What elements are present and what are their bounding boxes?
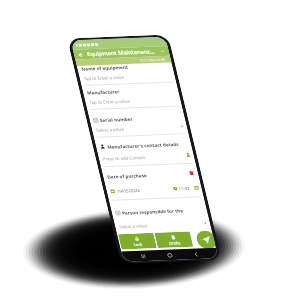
- button[interactable]: Back: [186, 245, 206, 264]
- staticText: Press to add Contact: [100, 135, 148, 180]
- staticText: Tap to Enter a value: [86, 80, 133, 123]
- staticText: Tap to Enter a value: [81, 56, 127, 99]
- staticText: Name of equipment: [78, 43, 131, 92]
- button[interactable]: Drafts: [148, 216, 199, 264]
- staticText: Manufacturer: [84, 74, 122, 110]
- button[interactable]: Tap to Enter a value: [81, 52, 184, 148]
- button[interactable]: Serial number: [85, 70, 189, 167]
- staticText: Serial number: [97, 101, 136, 138]
- button[interactable]: Select a value: [87, 79, 191, 176]
- button[interactable]: Home: [160, 246, 180, 265]
- staticText: Select a value: [93, 113, 127, 145]
- button[interactable]: Date of purchase: [99, 126, 202, 223]
- button[interactable]: Lock: [112, 217, 163, 265]
- button[interactable]: Person responsible for the equipment: [107, 162, 211, 259]
- button[interactable]: More options: [155, 45, 169, 58]
- staticText: 5:17 mins to fill: [138, 46, 168, 74]
- button[interactable]: Press to add Contact: [94, 108, 198, 205]
- staticText: Drafts: [167, 235, 184, 251]
- button[interactable]: Manufacturer: [79, 42, 182, 139]
- staticText: 19/05/2022: [114, 177, 143, 204]
- button[interactable]: Name of equipment: [73, 18, 176, 115]
- staticText: Lock: [131, 238, 145, 251]
- button[interactable]: 19/05/2022: [102, 140, 206, 237]
- staticText: 11:02: [175, 180, 192, 196]
- staticText: Person responsible for the equipment: [119, 171, 206, 252]
- button[interactable]: Manufacturer's contact details: [92, 96, 195, 193]
- button[interactable]: Select a value: [111, 176, 214, 273]
- staticText: Date of purchase: [104, 155, 149, 197]
- button[interactable]: Send: [188, 223, 223, 257]
- staticText: Manufacturer's contact details: [104, 109, 182, 182]
- staticText: Select a value: [116, 210, 150, 242]
- button[interactable]: Recents: [134, 247, 154, 266]
- button[interactable]: Tap to Enter a value: [75, 28, 179, 125]
- staticText: Equipment Maintenanc...: [83, 17, 159, 88]
- button[interactable]: Back: [74, 48, 87, 61]
